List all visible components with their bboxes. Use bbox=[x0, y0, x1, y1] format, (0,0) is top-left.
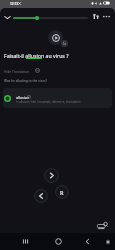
staticText: 1x bbox=[63, 42, 66, 46]
staticText: Was he alluding to the virus? bbox=[4, 79, 47, 83]
button[interactable]: Subtitles bbox=[90, 11, 101, 22]
button[interactable]: Back bbox=[82, 236, 93, 247]
staticText: Hide Translation bbox=[4, 69, 30, 73]
button[interactable]: Next sentence bbox=[44, 168, 59, 183]
button[interactable]: Repeat bbox=[55, 185, 69, 199]
button[interactable]: Playback speed bbox=[61, 40, 68, 47]
button[interactable]: Home bbox=[53, 236, 64, 247]
button[interactable]: Previous sentence bbox=[34, 189, 48, 203]
button[interactable]: Recents bbox=[20, 236, 31, 247]
button[interactable]: Hide Translation bbox=[2, 66, 42, 75]
button[interactable]: Keyboard search bbox=[95, 217, 111, 233]
staticText: Faisait-il allusion au virus ? bbox=[4, 52, 69, 59]
staticText: allusion bbox=[16, 95, 30, 100]
staticText: n. allusion, hint, innuendo, reference, … bbox=[16, 100, 81, 104]
button[interactable]: allusion bbox=[3, 88, 112, 108]
button[interactable]: Collapse player bbox=[2, 12, 13, 23]
button[interactable]: Play bbox=[48, 30, 63, 45]
staticText: R bbox=[60, 189, 64, 196]
button[interactable]: More options bbox=[101, 11, 112, 22]
staticText: 12:13 bbox=[10, 2, 19, 6]
